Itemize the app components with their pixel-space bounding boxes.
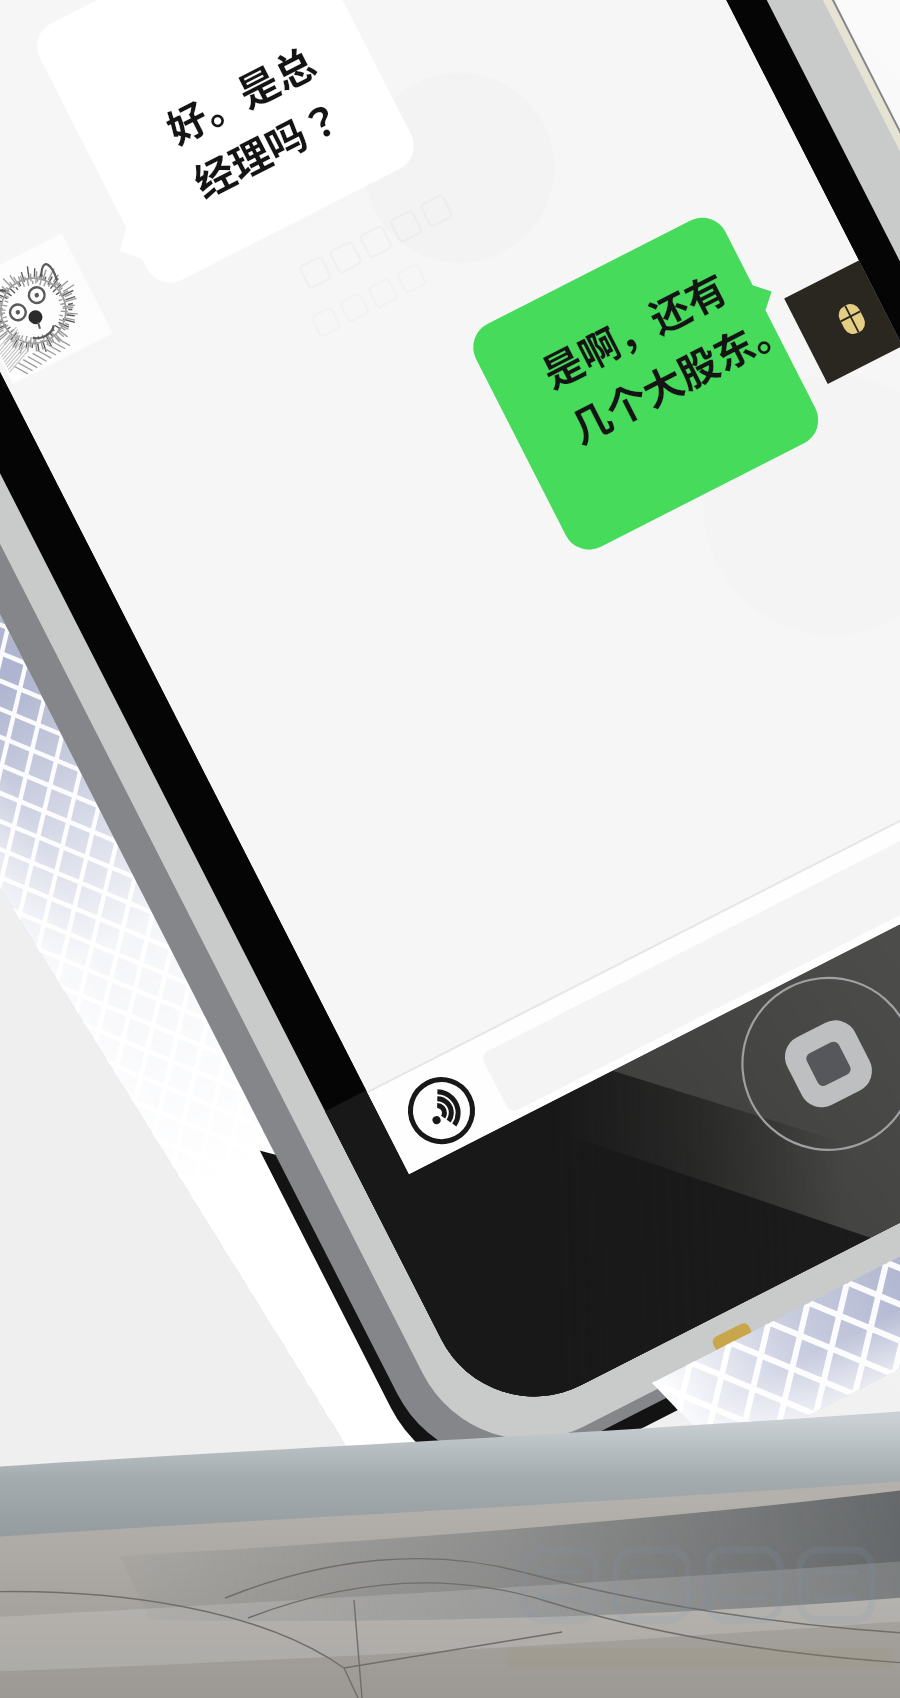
button[interactable]: Message 好。是总经理吗？ [33,0,412,287]
button[interactable]: Home [777,1013,880,1115]
button[interactable]: My avatar [784,257,900,384]
button[interactable]: Message input [470,940,900,1115]
button[interactable]: Contact avatar [0,233,113,384]
button[interactable]: Voice message [400,1069,483,1152]
button[interactable]: Message 是啊，还有几个大股东。 [468,214,822,554]
